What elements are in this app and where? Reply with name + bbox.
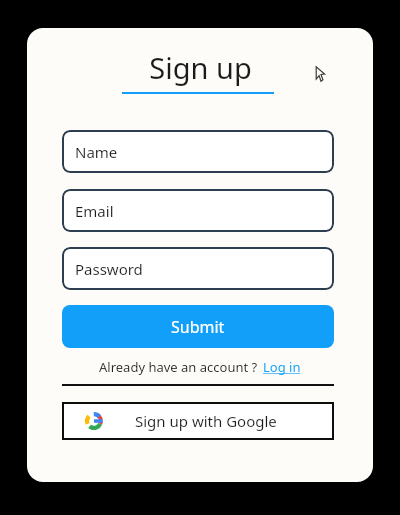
other: Google logo [85,412,103,430]
button[interactable]: Name [62,130,334,173]
staticText: Name [75,142,118,162]
button[interactable]: Password [62,247,334,290]
button[interactable]: Submit [62,305,334,348]
staticText: Sign up [149,48,252,87]
staticText: Log in [263,358,301,376]
button[interactable]: Google logo [62,402,334,440]
button[interactable]: Log in [263,358,301,376]
button[interactable]: Email [62,189,334,232]
staticText: Sign up with Google [135,411,277,431]
staticText: Already have an account ? [99,358,258,376]
staticText: Email [75,201,114,221]
staticText: Submit [171,316,225,338]
staticText: Password [75,259,143,279]
